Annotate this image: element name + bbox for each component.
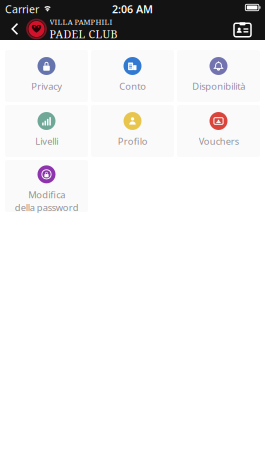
staticText: Conto (119, 80, 146, 92)
staticText: Carrier (5, 2, 39, 16)
button[interactable]: Membership card (233, 18, 252, 40)
button[interactable]: Livelli (5, 105, 88, 157)
button[interactable]: Conto (91, 50, 174, 102)
button[interactable]: Privacy (5, 50, 88, 102)
staticText: Modifica della password (14, 188, 78, 214)
button[interactable]: Modifica della password (5, 160, 88, 212)
staticText: Livelli (35, 135, 58, 147)
button[interactable]: Disponibilità (177, 50, 260, 102)
staticText: VILLA PAMPHILI (49, 17, 112, 27)
staticText: Vouchers (198, 135, 238, 147)
button[interactable]: Profilo (91, 105, 174, 157)
button[interactable]: Back (7, 18, 22, 40)
staticText: Disponibilità (192, 80, 245, 92)
staticText: 2:06 AM (112, 2, 153, 16)
staticText: Profilo (117, 135, 147, 147)
staticText: PADEL CLUB (49, 27, 117, 41)
button[interactable]: Vouchers (177, 105, 260, 157)
staticText: Privacy (31, 80, 62, 92)
